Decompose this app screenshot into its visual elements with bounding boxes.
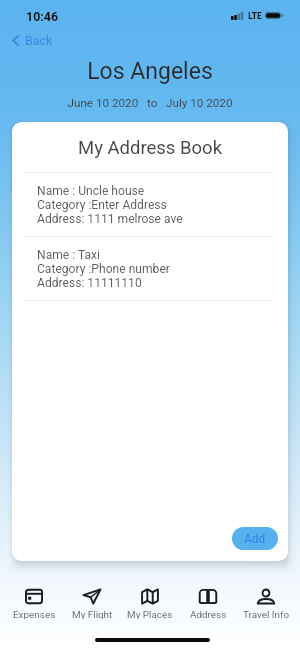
staticText: LTE (248, 11, 262, 21)
button[interactable]: Name : Taxi (12, 237, 288, 300)
staticText: My Places (127, 609, 173, 619)
button[interactable]: My Places (121, 585, 179, 619)
staticText: June 10 2020 to July 10 2020 (0, 96, 300, 110)
staticText: Expenses (13, 609, 56, 619)
staticText: Address: 1111 melrose ave (37, 212, 183, 226)
staticText: 10:46 (26, 9, 59, 24)
button[interactable]: Back (10, 30, 55, 51)
button[interactable]: My Flight (63, 585, 121, 619)
button[interactable]: Expenses (5, 585, 63, 619)
staticText: Address (190, 609, 227, 619)
button[interactable]: Name : Uncle house (12, 173, 288, 236)
staticText: Category :Phone number (37, 262, 170, 276)
staticText: Back (25, 33, 53, 48)
staticText: Address: 11111110 (37, 276, 142, 290)
staticText: Name : Taxi (37, 248, 100, 262)
staticText: Name : Uncle house (37, 184, 145, 198)
staticText: Add (244, 532, 266, 546)
button[interactable]: Address (179, 585, 237, 619)
staticText: Travel Info (243, 609, 290, 619)
staticText: Category :Enter Address (37, 198, 167, 212)
staticText: Los Angeles (0, 58, 300, 85)
button[interactable]: Travel Info (237, 585, 295, 619)
staticText: My Address Book (12, 137, 288, 159)
staticText: My Flight (72, 609, 113, 619)
button[interactable]: Add (232, 527, 278, 550)
